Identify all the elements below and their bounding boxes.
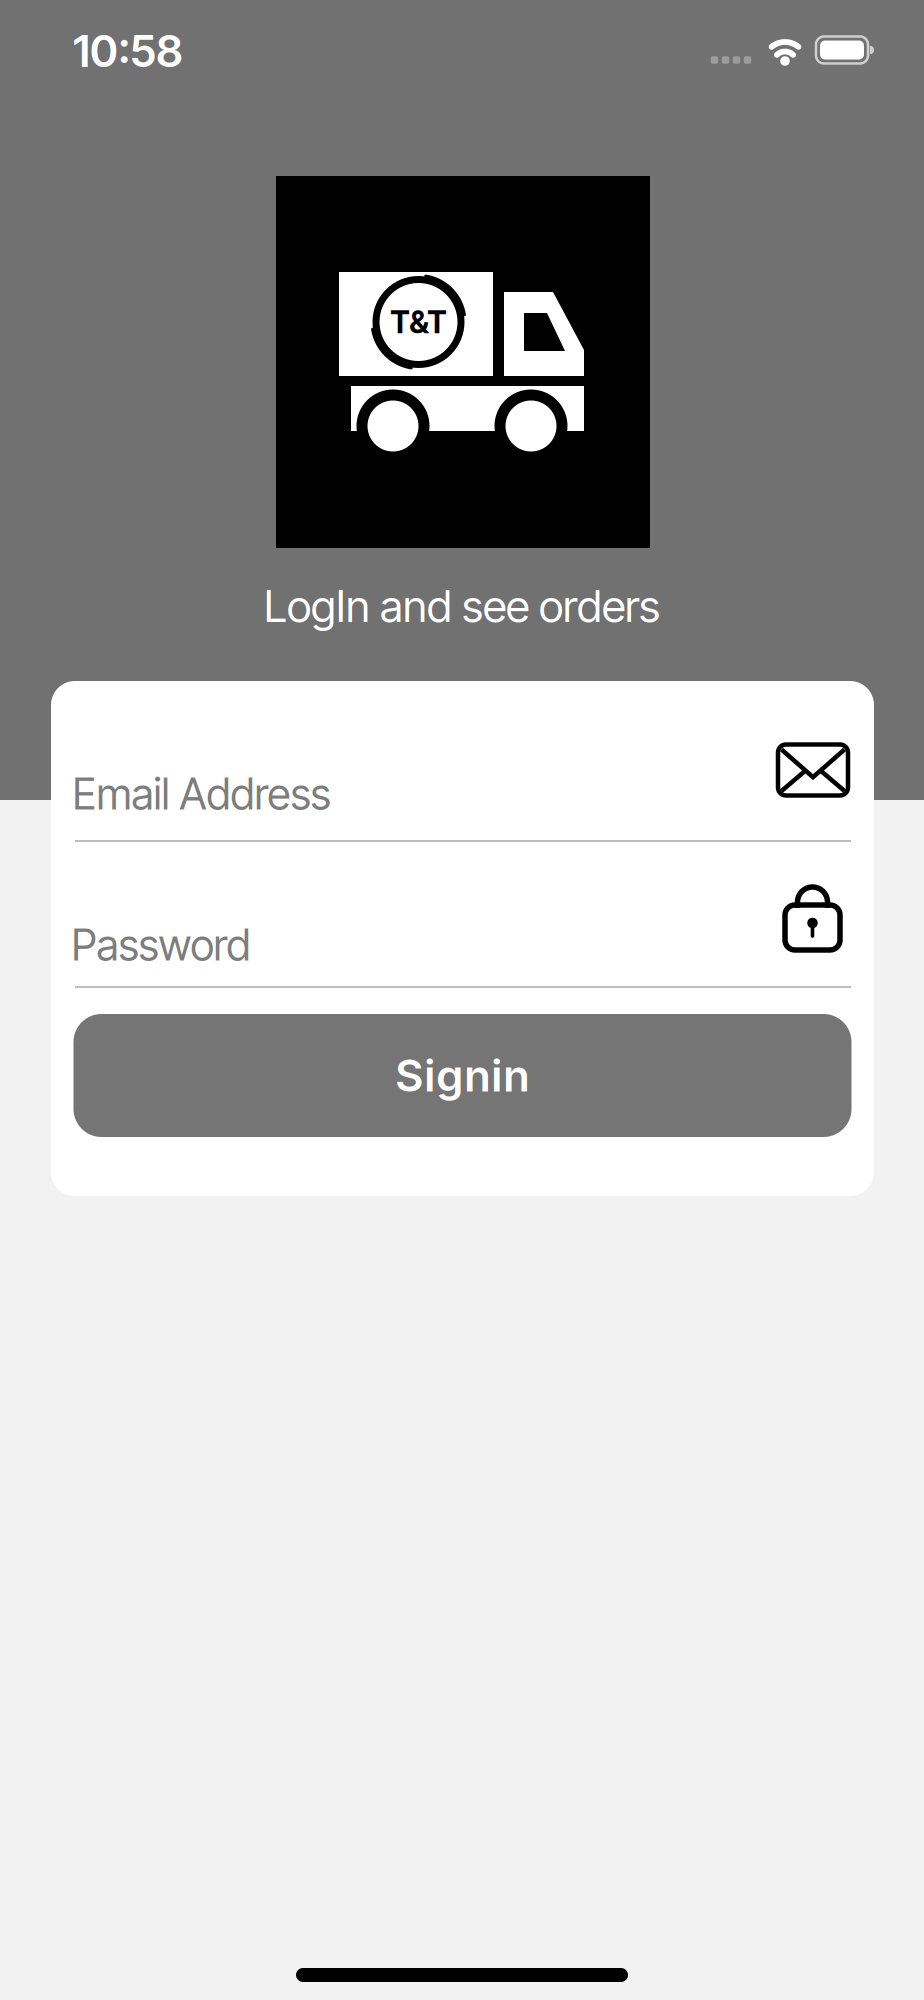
staticText: T&T [390, 303, 447, 340]
button[interactable]: Password [51, 831, 874, 997]
staticText: Email Address [72, 768, 330, 820]
staticText: Signin [395, 1049, 530, 1102]
button[interactable]: Signin [73, 1014, 851, 1137]
staticText: LogIn and see orders [264, 579, 660, 633]
staticText: Password [71, 919, 250, 971]
staticText: 10:58 [73, 24, 183, 78]
button[interactable]: Email Address [51, 681, 874, 851]
